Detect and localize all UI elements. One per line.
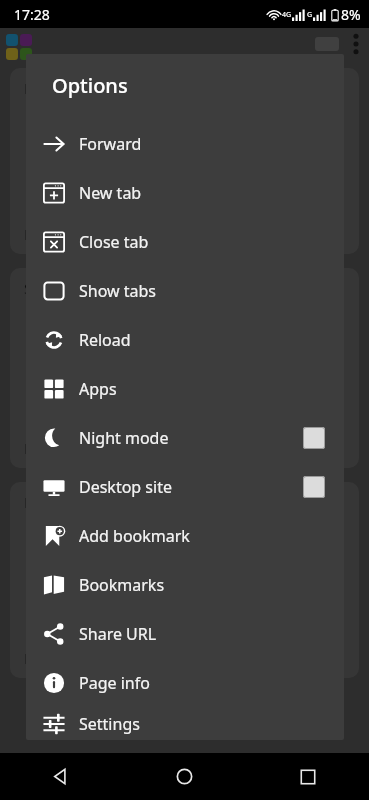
button[interactable]: Bookmarks xyxy=(26,560,344,609)
button[interactable]: Share URL xyxy=(26,609,344,658)
button[interactable]: Apps xyxy=(26,364,344,413)
button[interactable]: Night mode xyxy=(26,413,344,462)
button[interactable]: Settings xyxy=(26,707,344,740)
staticText: Saved pages xyxy=(24,278,113,298)
button[interactable]: New tab xyxy=(26,168,344,217)
staticText: Show tabs xyxy=(79,280,325,302)
staticText: G xyxy=(307,10,313,20)
staticText: Forward xyxy=(79,133,325,155)
staticText: 4G xyxy=(282,10,292,20)
staticText: 8% xyxy=(341,5,361,24)
staticText: Apps xyxy=(79,378,325,400)
staticText: Night mode xyxy=(79,427,303,449)
button[interactable]: Page info xyxy=(26,658,344,707)
button[interactable]: Close tab xyxy=(26,217,344,266)
button[interactable]: Home xyxy=(123,753,246,800)
staticText: Add bookmark xyxy=(79,525,325,547)
button[interactable]: Recent apps xyxy=(246,753,369,800)
staticText: Settings xyxy=(79,713,325,735)
staticText: New tab xyxy=(79,182,325,204)
staticText: Downloads xyxy=(24,438,103,458)
staticText: Page info xyxy=(79,672,325,694)
staticText: Options xyxy=(52,72,128,99)
staticText: 17:28 xyxy=(14,5,50,24)
staticText: Bookmarks xyxy=(79,574,325,596)
button[interactable]: Reload xyxy=(26,315,344,364)
button[interactable]: Back xyxy=(0,753,123,800)
button[interactable]: Desktop site xyxy=(26,462,344,511)
staticText: Reload xyxy=(79,329,325,351)
staticText: Most visited xyxy=(24,492,109,512)
staticText: Share URL xyxy=(79,623,325,645)
staticText: History xyxy=(24,224,75,244)
button[interactable]: Add bookmark xyxy=(26,511,344,560)
staticText: Desktop site xyxy=(79,476,303,498)
button[interactable]: Show tabs xyxy=(26,266,344,315)
staticText: Close tab xyxy=(79,231,325,253)
staticText: Bookmarks xyxy=(24,78,104,98)
button[interactable]: Forward xyxy=(26,119,344,168)
